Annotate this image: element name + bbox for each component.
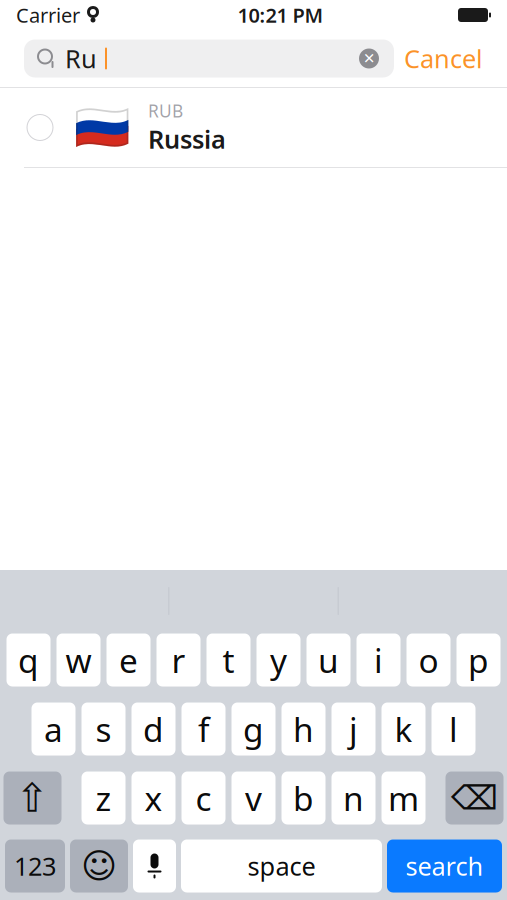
staticText: i [374, 638, 383, 682]
staticText: k [394, 707, 412, 751]
button[interactable]: j [331, 702, 375, 755]
button[interactable]: q [6, 633, 50, 686]
staticText: x [144, 776, 162, 820]
staticText: p [468, 638, 489, 682]
staticText: c [195, 776, 211, 820]
staticText: d [143, 707, 164, 751]
button[interactable]: w [56, 633, 100, 686]
button[interactable]: h [281, 702, 325, 755]
staticText: ⇧ [15, 775, 49, 821]
staticText: l [449, 707, 458, 751]
staticText: t [222, 638, 234, 682]
staticText: j [349, 707, 358, 751]
button[interactable]: g [231, 702, 275, 755]
staticText: y [270, 638, 287, 682]
staticText: Cancel [404, 42, 483, 75]
button[interactable]: Shift [3, 771, 61, 824]
staticText: g [243, 707, 264, 751]
button[interactable]: c [181, 771, 225, 824]
button[interactable]: s [81, 702, 125, 755]
button[interactable]: l [431, 702, 475, 755]
button[interactable]: y [256, 633, 300, 686]
button[interactable]: u [306, 633, 350, 686]
button[interactable]: e [106, 633, 150, 686]
button[interactable]: t [206, 633, 250, 686]
button[interactable]: p [456, 633, 500, 686]
button[interactable]: x [131, 771, 175, 824]
button[interactable]: v [231, 771, 275, 824]
staticText: o [418, 638, 438, 682]
staticText: r [171, 638, 185, 682]
staticText: Ru [65, 42, 97, 75]
staticText: ☺ [81, 846, 117, 886]
staticText: s [95, 707, 111, 751]
button[interactable]: b [281, 771, 325, 824]
staticText [80, 6, 83, 24]
button[interactable]: Cancel [404, 39, 483, 77]
staticText: h [293, 707, 314, 751]
button[interactable]: Dictation [133, 839, 176, 892]
staticText: Russia [148, 122, 226, 156]
button[interactable]: d [131, 702, 175, 755]
staticText: search [405, 849, 483, 883]
staticText: 10:21 PM [237, 2, 323, 28]
staticText: ✕ [363, 50, 375, 67]
staticText: 🇷🇺 [74, 102, 130, 153]
staticText: v [245, 776, 262, 820]
staticText: m [388, 776, 419, 820]
button[interactable]: z [81, 771, 125, 824]
staticText: n [343, 776, 364, 820]
staticText: z [95, 776, 111, 820]
button[interactable]: k [381, 702, 425, 755]
button[interactable]: search [387, 839, 502, 892]
staticText: u [318, 638, 339, 682]
staticText: q [18, 638, 39, 682]
button[interactable]: Clear text [357, 46, 381, 70]
staticText: f [198, 707, 209, 751]
button[interactable]: Emoji keyboard [70, 839, 128, 892]
button[interactable]: a [31, 702, 75, 755]
button[interactable]: space [181, 839, 382, 892]
button[interactable]: 🇷🇺 [0, 88, 507, 167]
button[interactable]: r [156, 633, 200, 686]
button[interactable]: n [331, 771, 375, 824]
staticText: Carrier [16, 2, 80, 28]
staticText: ⌫ [451, 779, 498, 817]
button[interactable]: Delete [445, 771, 503, 824]
button[interactable]: f [181, 702, 225, 755]
staticText: b [293, 776, 314, 820]
button[interactable]: m [381, 771, 425, 824]
button[interactable]: 123 [5, 839, 65, 892]
button[interactable]: i [356, 633, 400, 686]
button[interactable]: o [406, 633, 450, 686]
staticText: e [119, 638, 138, 682]
staticText: 123 [14, 849, 56, 883]
staticText: RUB [148, 99, 183, 122]
staticText: a [44, 707, 63, 751]
staticText: w [65, 638, 91, 682]
staticText: space [247, 849, 315, 883]
